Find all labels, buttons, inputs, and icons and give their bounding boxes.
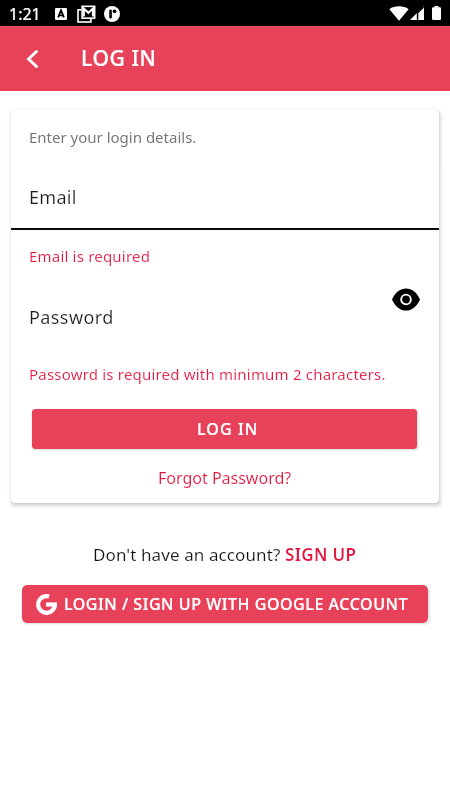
staticText: SIGN UP [285,543,357,566]
staticText: Password [29,305,114,330]
button[interactable]: LOG IN [32,409,417,449]
staticText: LOGIN / SIGN UP WITH GOOGLE ACCOUNT [64,593,409,615]
button[interactable]: SIGN UP [285,543,357,566]
button[interactable]: Forgot Password? [11,463,439,493]
button[interactable]: LOGIN / SIGN UP WITH GOOGLE ACCOUNT [22,585,428,623]
staticText: Email [29,185,77,210]
staticText: Passowrd is required with minimum 2 char… [29,364,386,384]
staticText: LOG IN [197,418,259,440]
staticText: LOG IN [81,44,157,73]
button[interactable]: Back [12,38,54,80]
button[interactable]: Show password [383,281,429,317]
staticText: 1:21 [9,3,41,25]
staticText: Email is required [29,246,151,266]
staticText: Enter your login details. [29,127,197,147]
staticText: Forgot Password? [158,467,292,489]
staticText: Don't have an account? [93,543,285,566]
